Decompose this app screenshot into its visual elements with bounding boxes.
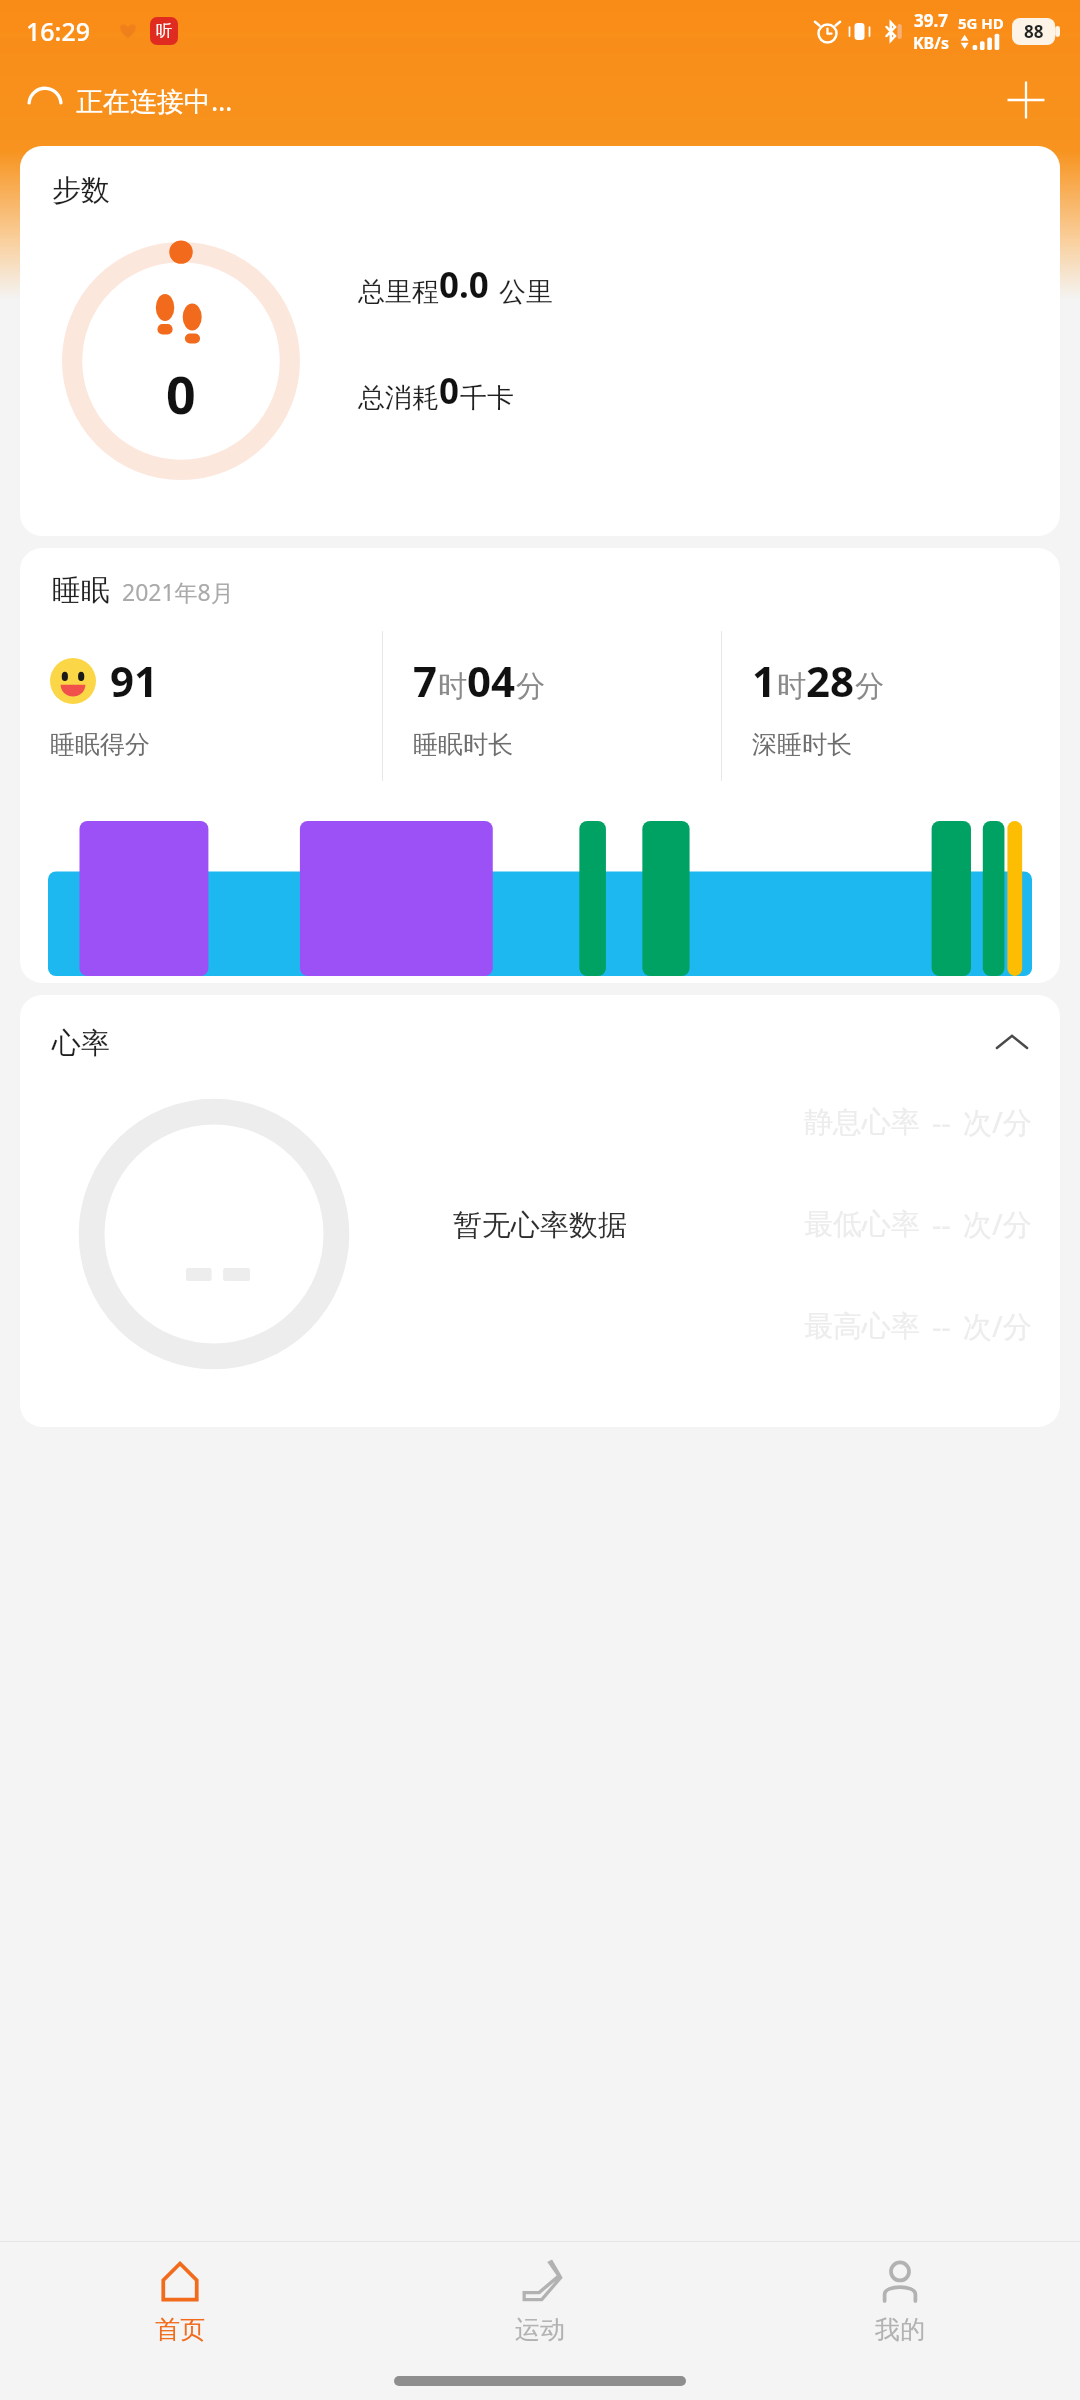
staticText: 次/分 <box>963 1306 1032 1346</box>
staticText: 91 <box>110 652 159 709</box>
staticText: 千卡 <box>460 381 514 415</box>
staticText: KB/s <box>913 32 949 54</box>
staticText: 首页 <box>155 2314 205 2345</box>
staticText: 88 <box>1024 20 1044 43</box>
staticText: 听 <box>156 21 172 41</box>
staticText: 0 <box>166 358 196 429</box>
staticText: 最高心率 <box>804 1308 920 1345</box>
staticText: -- <box>932 1307 951 1346</box>
staticText: 公里 <box>499 275 553 309</box>
staticText: 正在连接中… <box>76 82 233 119</box>
staticText: 0 <box>439 367 460 415</box>
button[interactable]: 步数 <box>20 146 1060 536</box>
staticText: 分 <box>855 668 884 705</box>
staticText: 5G HD <box>958 13 1004 33</box>
staticText: 时 <box>777 668 806 705</box>
staticText: 2021年8月 <box>122 576 234 607</box>
staticText: 次/分 <box>963 1204 1032 1244</box>
button[interactable]: 正在连接中… <box>24 79 233 121</box>
staticText: 分 <box>516 668 545 705</box>
button[interactable]: 运动 <box>360 2242 720 2362</box>
button[interactable]: 首页 <box>0 2242 360 2362</box>
staticText: 0.0 <box>439 261 489 309</box>
button[interactable]: 睡眠 <box>20 548 1060 983</box>
staticText: 总消耗 <box>358 381 439 415</box>
staticText: 心率 <box>52 1025 110 1062</box>
button[interactable]: Add device <box>992 66 1060 134</box>
button[interactable]: Collapse heart rate <box>980 1011 1044 1075</box>
button[interactable]: 心率 <box>20 995 1060 1427</box>
staticText: 运动 <box>515 2314 565 2345</box>
staticText: 时 <box>438 668 467 705</box>
staticText: 深睡时长 <box>752 729 852 760</box>
staticText: 我的 <box>875 2314 925 2345</box>
staticText: 暂无心率数据 <box>453 1207 627 1244</box>
staticText: 7 <box>413 652 438 709</box>
staticText: 28 <box>806 652 855 709</box>
staticText: 步数 <box>52 172 110 209</box>
staticText: 静息心率 <box>804 1104 920 1141</box>
staticText: 次/分 <box>963 1102 1032 1142</box>
button[interactable]: 我的 <box>720 2242 1080 2362</box>
staticText: -- <box>932 1205 951 1244</box>
staticText: 睡眠 <box>52 572 110 609</box>
staticText: 39.7 <box>914 9 948 32</box>
staticText: 总里程 <box>358 275 439 309</box>
staticText: 1 <box>752 652 777 709</box>
staticText: 最低心率 <box>804 1206 920 1243</box>
staticText: 16:29 <box>26 14 91 48</box>
staticText: 睡眠时长 <box>413 729 513 760</box>
staticText: 04 <box>467 652 516 709</box>
staticText: 睡眠得分 <box>50 729 150 760</box>
staticText: -- <box>932 1103 951 1142</box>
